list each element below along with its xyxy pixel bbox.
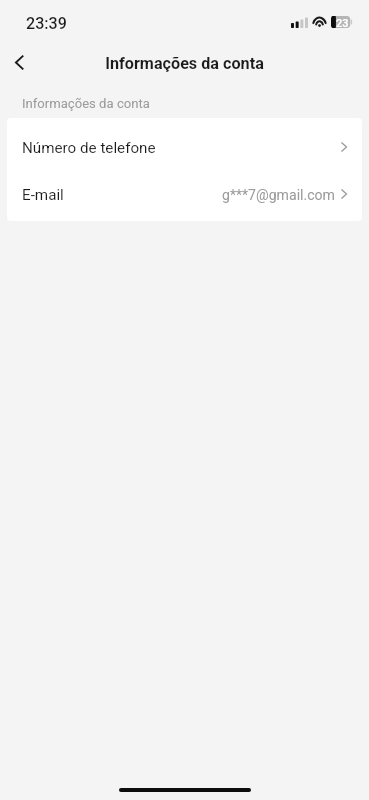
button[interactable]: Voltar	[0, 44, 43, 81]
staticText: Número de telefone	[22, 139, 156, 157]
staticText: Informações da conta	[105, 54, 264, 73]
button[interactable]: E-mail	[7, 169, 362, 221]
staticText: E-mail	[22, 186, 64, 204]
button[interactable]: Número de telefone	[7, 118, 362, 169]
staticText: 23:39	[26, 14, 67, 33]
staticText: Informações da conta	[22, 96, 150, 111]
staticText: g***7@gmail.com	[222, 187, 335, 204]
staticText: 23	[336, 17, 349, 29]
